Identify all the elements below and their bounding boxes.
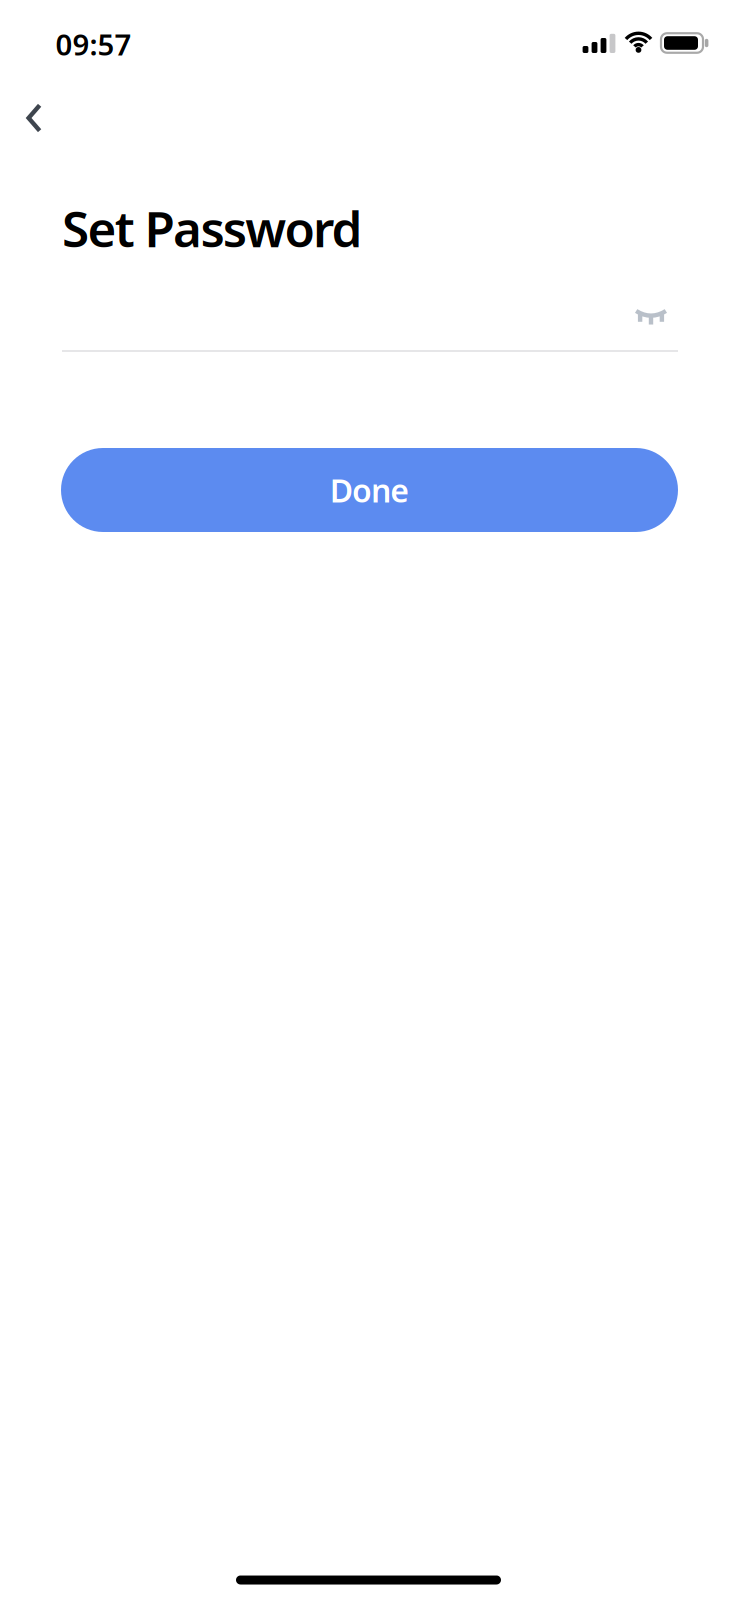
staticText: 09:57 xyxy=(55,24,131,63)
button[interactable]: Done xyxy=(61,448,678,532)
button[interactable]: Show password xyxy=(626,301,675,332)
button[interactable]: Back xyxy=(14,91,53,145)
staticText: Set Password xyxy=(62,195,362,261)
staticText: Done xyxy=(330,469,409,511)
